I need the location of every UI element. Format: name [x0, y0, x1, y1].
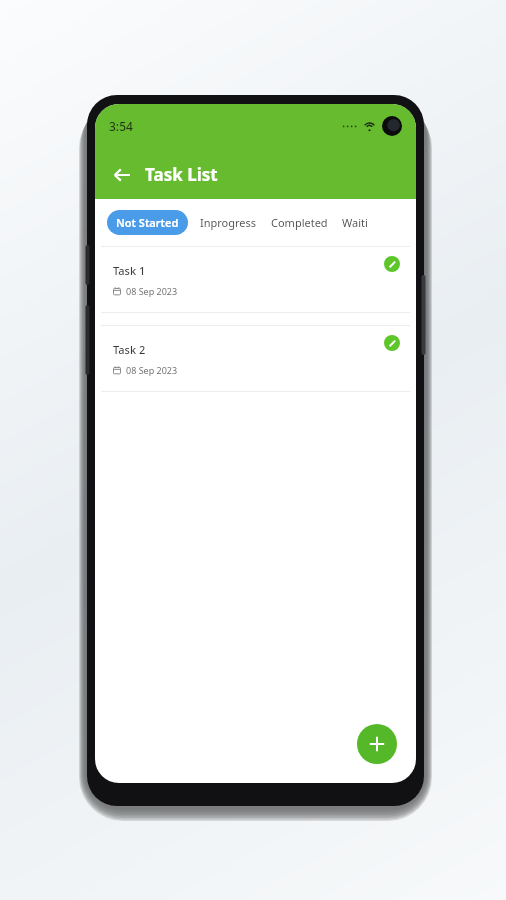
staticText: Inprogress	[200, 215, 257, 230]
staticText: Task 2	[113, 342, 146, 357]
button[interactable]: Task 2	[95, 325, 416, 392]
button[interactable]: Edit task	[384, 256, 400, 272]
staticText: 08 Sep 2023	[126, 285, 178, 297]
staticText: Waiti	[342, 215, 368, 230]
button[interactable]: Inprogress	[198, 210, 259, 235]
staticText: Not Started	[116, 215, 179, 230]
button[interactable]: Add task	[357, 724, 397, 764]
button[interactable]: Task 1	[95, 246, 416, 313]
staticText: Completed	[271, 215, 328, 230]
staticText: Task List	[145, 163, 218, 186]
button[interactable]: Completed	[269, 210, 330, 235]
button[interactable]: Not Started	[107, 210, 188, 235]
button[interactable]: Waiti	[340, 210, 370, 235]
staticText: 08 Sep 2023	[126, 364, 178, 376]
button[interactable]: Back	[105, 158, 139, 192]
staticText: Task 1	[113, 263, 146, 278]
button[interactable]: Edit task	[384, 335, 400, 351]
staticText: 3:54	[109, 118, 133, 134]
